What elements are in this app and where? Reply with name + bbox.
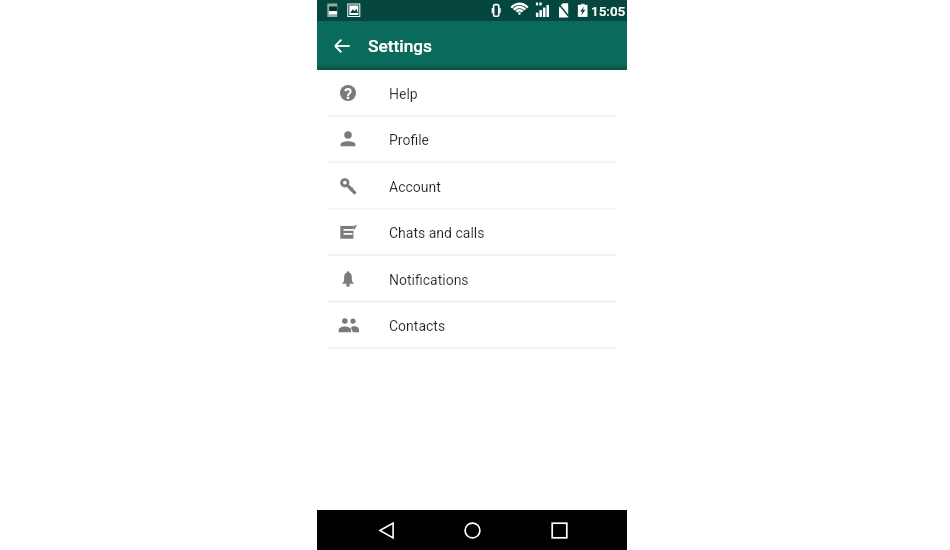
button[interactable]: Back: [360, 510, 412, 550]
button[interactable]: Help: [317, 70, 627, 116]
staticText: Help: [389, 86, 418, 102]
button[interactable]: Account: [317, 163, 627, 209]
staticText: 15:05: [591, 3, 626, 19]
staticText: Notifications: [389, 272, 469, 288]
staticText: Account: [389, 179, 441, 195]
staticText: Chats and calls: [389, 225, 485, 241]
button[interactable]: Notifications: [317, 256, 627, 302]
button[interactable]: Profile: [317, 116, 627, 162]
button[interactable]: Back: [326, 30, 357, 61]
button[interactable]: Recent apps: [533, 510, 585, 550]
button[interactable]: Contacts: [317, 302, 627, 348]
button[interactable]: Home: [446, 510, 498, 550]
button[interactable]: Chats and calls: [317, 209, 627, 255]
staticText: Contacts: [389, 318, 446, 334]
staticText: Settings: [368, 36, 433, 56]
staticText: Profile: [389, 132, 430, 148]
